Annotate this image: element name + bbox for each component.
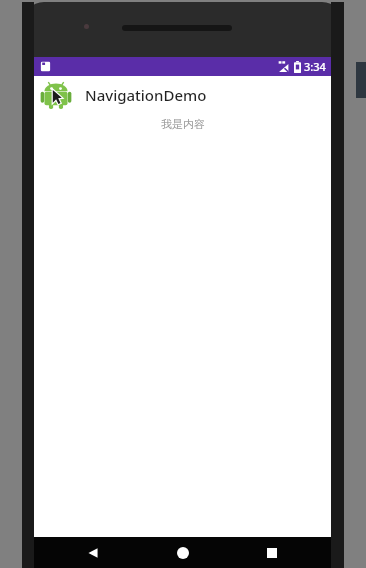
- button[interactable]: App icon: [40, 79, 72, 111]
- button[interactable]: Recents: [242, 537, 302, 568]
- staticText: 3:34: [304, 59, 326, 74]
- staticText: NavigationDemo: [85, 85, 207, 105]
- button[interactable]: Back: [63, 537, 123, 568]
- button[interactable]: Home: [153, 537, 213, 568]
- staticText: 我是内容: [161, 117, 205, 131]
